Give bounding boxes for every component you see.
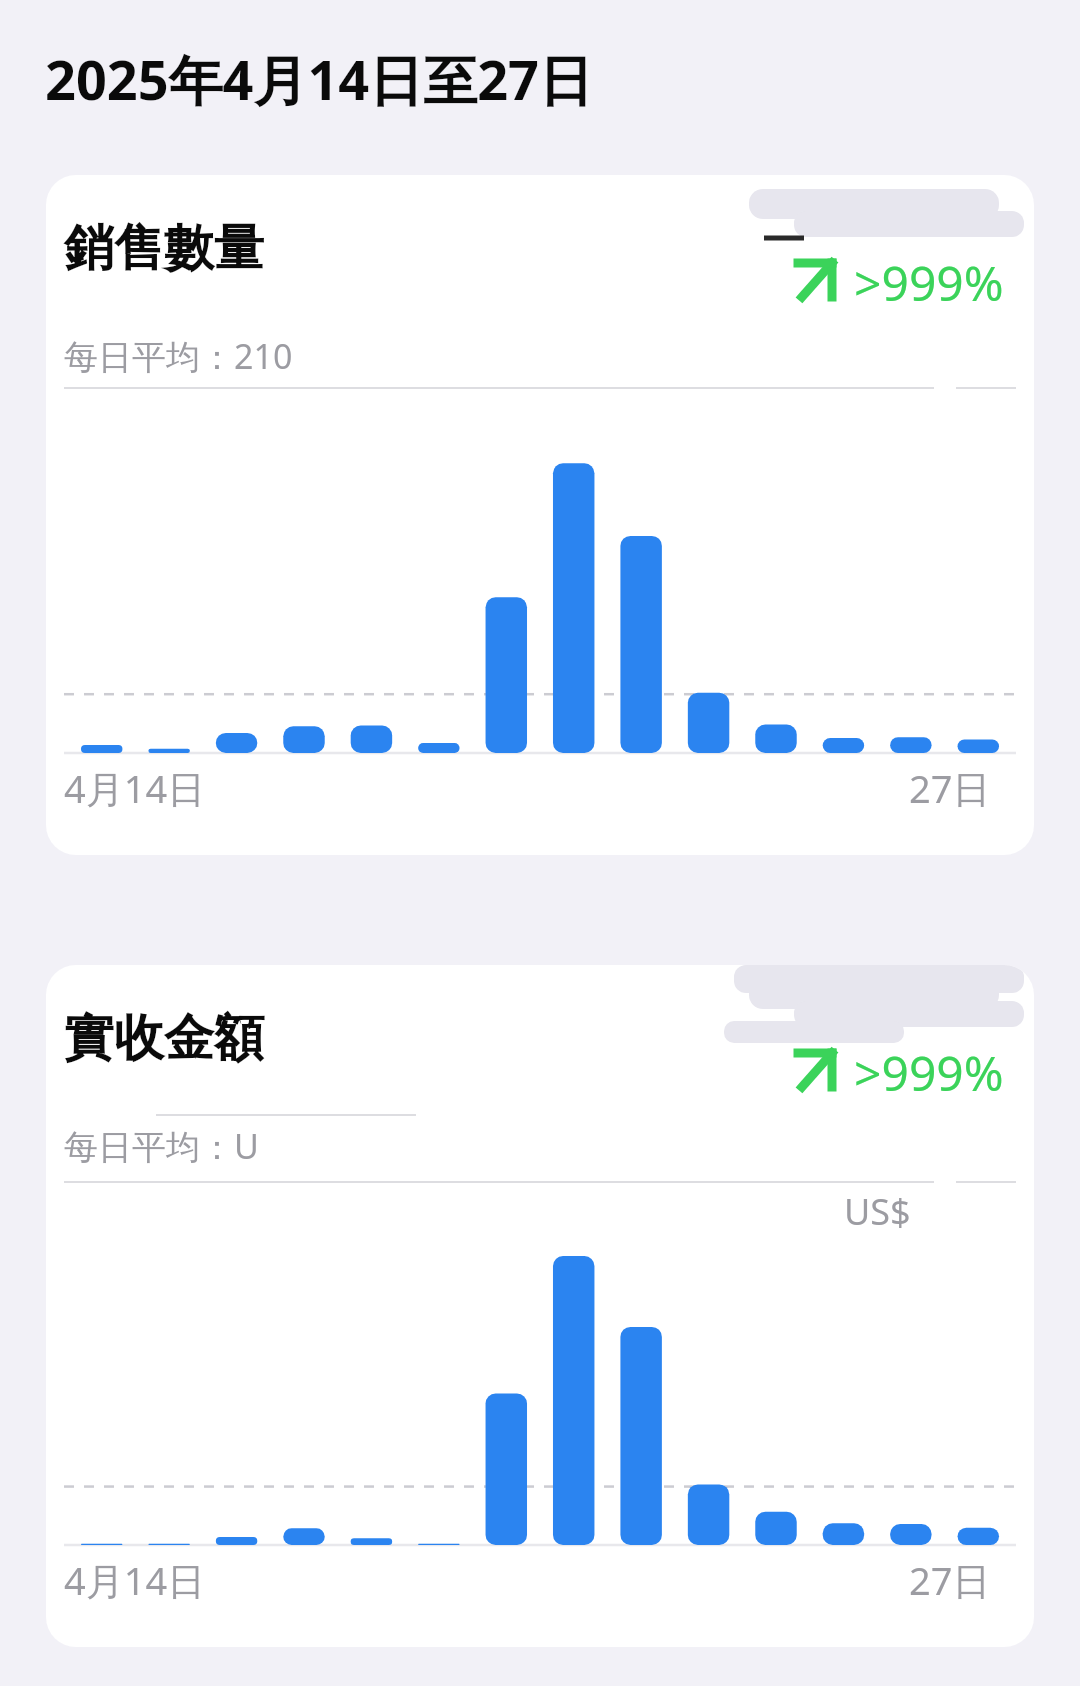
button[interactable]: Increase — [796, 253, 946, 318]
staticText: >999% — [854, 1040, 1004, 1105]
staticText: >999% — [854, 250, 1004, 315]
staticText: 4月14日 — [64, 762, 206, 814]
button[interactable]: 銷售數量 — [46, 175, 1034, 855]
staticText: 銷售數量 — [64, 217, 264, 280]
staticText: 每日平均：210 — [64, 333, 293, 379]
staticText: 27日 — [909, 1554, 991, 1606]
button[interactable]: Increase — [796, 1043, 946, 1108]
button[interactable]: 實收金額 — [46, 965, 1034, 1647]
other: Increase — [796, 1043, 842, 1095]
staticText: 實收金額 — [64, 1007, 264, 1070]
staticText: 27日 — [909, 762, 991, 814]
staticText: US$ — [844, 1187, 911, 1236]
other: Increase — [796, 253, 842, 305]
staticText: 4月14日 — [64, 1554, 206, 1606]
staticText: 每日平均：U — [64, 1123, 259, 1169]
staticText: 2025年4月14日至27日 — [45, 42, 593, 116]
